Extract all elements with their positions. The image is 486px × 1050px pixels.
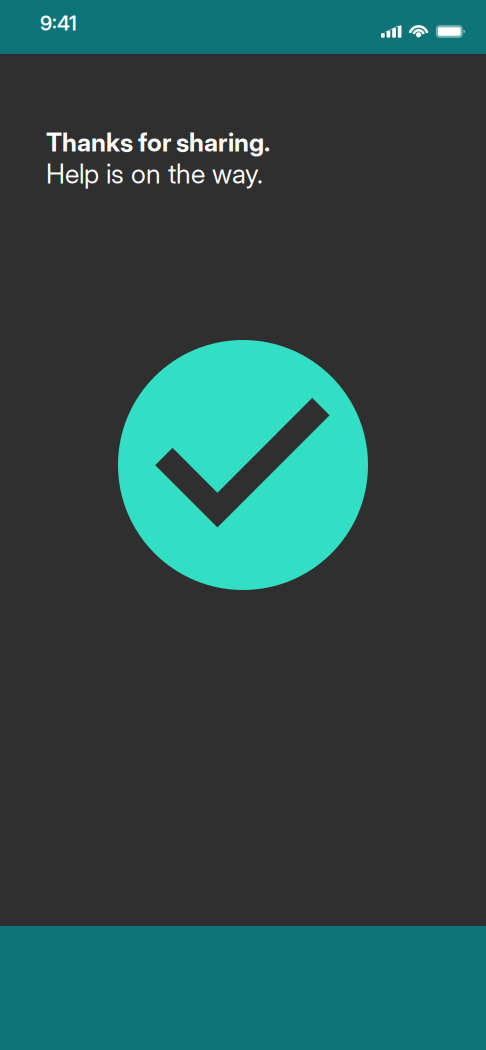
staticText: Thanks for sharing. — [46, 127, 270, 158]
button[interactable]: Report submitted — [118, 340, 368, 590]
staticText: 9:41 — [40, 11, 77, 35]
staticText: Help is on the way. — [46, 158, 263, 190]
